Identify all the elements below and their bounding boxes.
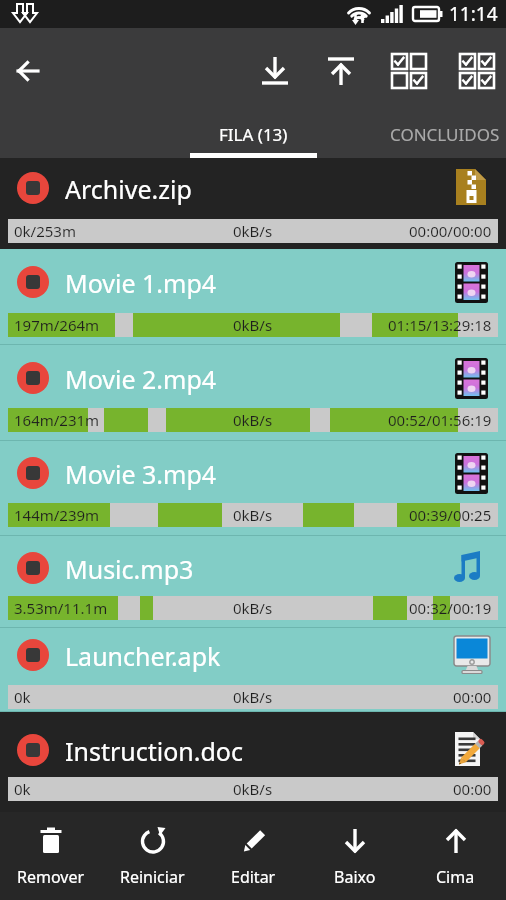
staticText: Movie 1.mp4 [65,266,217,300]
staticText: Music.mp3 [65,552,194,586]
staticText: 144m/239m [14,505,100,525]
button[interactable] [8,51,48,91]
staticText: 0k [14,687,31,707]
staticText: 197m/264m [14,315,100,335]
staticText: 00:00 [453,687,492,707]
staticText: 0kB/s [233,315,273,335]
staticText: Reiniciar [120,866,185,888]
staticText: Instruction.doc [65,734,243,768]
button[interactable] [17,552,49,584]
staticText: 0kB/s [233,221,273,241]
staticText: 0kB/s [233,598,273,618]
button[interactable]: Movie 2.mp4 [0,345,506,441]
staticText: 0k [14,779,31,799]
button[interactable]: Remover [0,812,102,900]
button[interactable] [17,639,49,671]
button[interactable]: Reiniciar [102,812,203,900]
staticText: Remover [17,866,85,888]
button[interactable]: Cima [405,812,506,900]
staticText: 00:00 [453,779,492,799]
button[interactable]: Movie 3.mp4 [0,441,506,536]
button[interactable] [317,47,365,95]
button[interactable]: FILA (13) [190,110,317,158]
staticText: 00:32/00:19 [409,598,492,618]
button[interactable]: Archive.zip [0,158,506,249]
staticText: Baixo [334,866,376,888]
staticText: Editar [231,866,276,888]
staticText: 0k/253m [14,221,76,241]
staticText: CONCLUIDOS [390,123,500,146]
staticText: 0kB/s [233,779,273,799]
button[interactable] [251,47,299,95]
button[interactable] [385,47,433,95]
button[interactable]: Editar [203,812,304,900]
button[interactable] [17,457,49,489]
button[interactable]: Movie 1.mp4 [0,249,506,345]
button[interactable] [17,734,49,766]
staticText: 164m/231m [14,410,100,430]
staticText: Cima [436,866,475,888]
button[interactable]: Baixo [304,812,405,900]
staticText: FILA (13) [219,123,288,146]
button[interactable] [17,172,49,204]
staticText: 0kB/s [233,505,273,525]
staticText: 0kB/s [233,410,273,430]
staticText: 0kB/s [233,687,273,707]
staticText: Archive.zip [65,172,192,206]
staticText: Launcher.apk [65,639,221,673]
button[interactable]: Launcher.apk [0,628,506,712]
button[interactable] [453,47,501,95]
button[interactable]: Instruction.doc [0,712,506,812]
button[interactable] [17,266,49,298]
staticText: 00:39/00:25 [409,505,492,525]
staticText: 01:15/13:29:18 [388,315,492,335]
button[interactable]: CONCLUIDOS [383,110,506,158]
staticText: 11:14 [449,1,498,27]
staticText: 3.53m/11.1m [14,598,108,618]
staticText: 00:00/00:00 [409,221,492,241]
staticText: Movie 2.mp4 [65,362,217,396]
staticText: Movie 3.mp4 [65,457,217,491]
button[interactable] [17,362,49,394]
button[interactable]: Music.mp3 [0,536,506,628]
staticText: 00:52/01:56:19 [388,410,492,430]
